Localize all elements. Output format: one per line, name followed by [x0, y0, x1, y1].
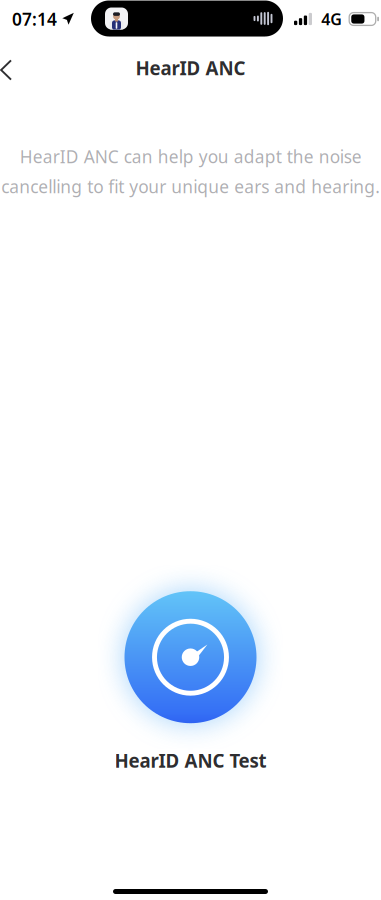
button[interactable]: Back: [0, 46, 32, 93]
staticText: 4G: [321, 8, 342, 30]
button[interactable]: HearID ANC Test: [114, 591, 266, 773]
staticText: 07:14: [12, 7, 57, 30]
staticText: HearID ANC: [135, 56, 245, 80]
staticText: HearID ANC Test: [114, 748, 266, 773]
staticText: HearID ANC can help you adapt the noise …: [1, 145, 380, 198]
